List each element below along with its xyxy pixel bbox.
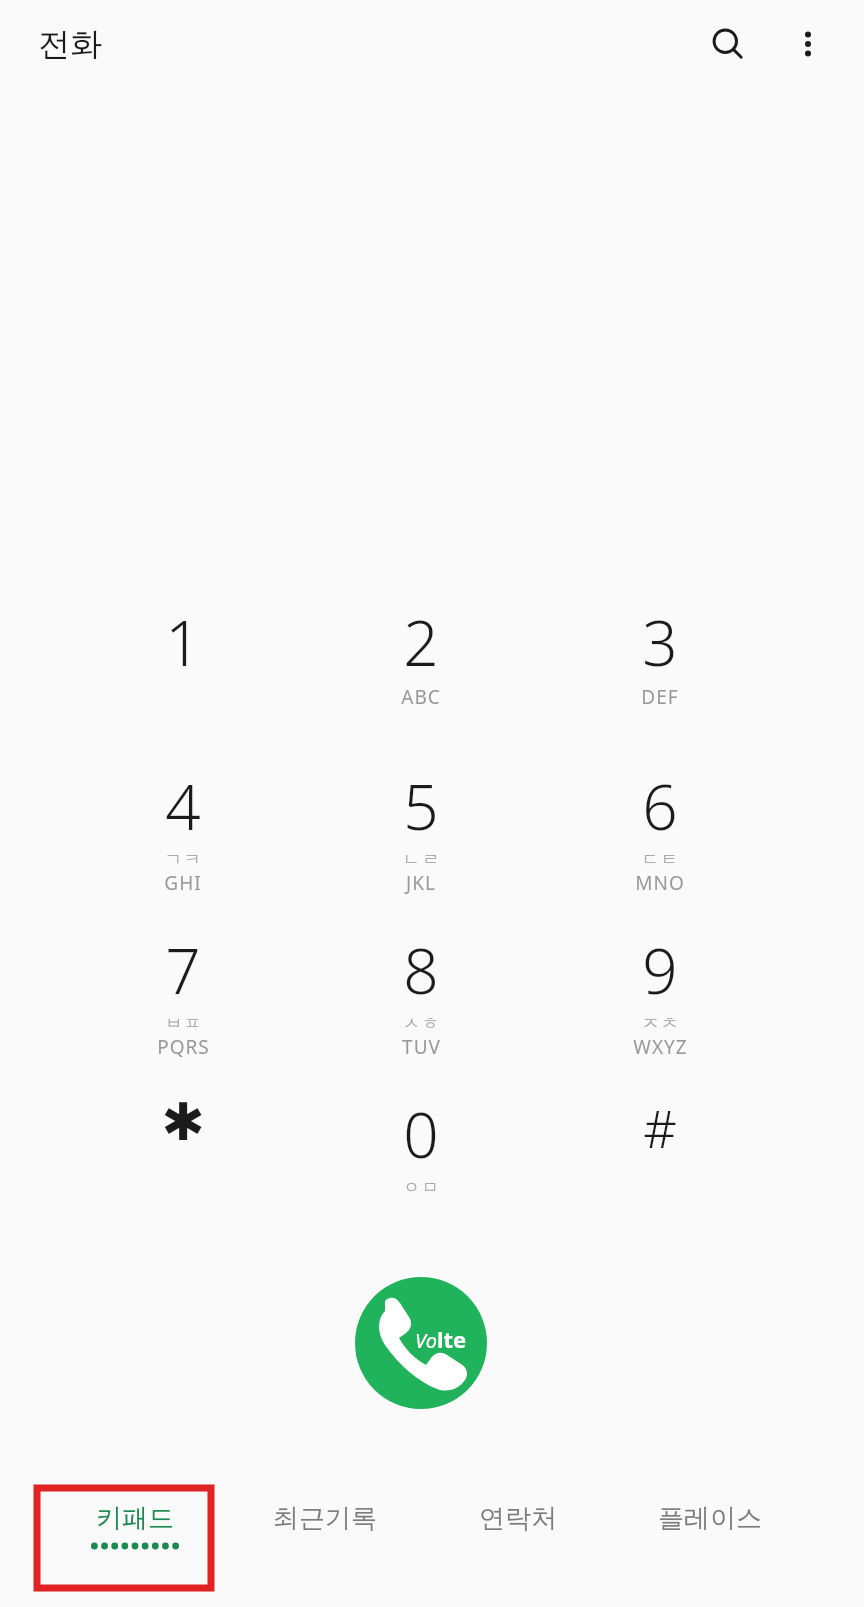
staticText: TUV: [402, 1034, 441, 1060]
button[interactable]: 연락처: [426, 1480, 610, 1592]
button[interactable]: 0: [337, 1086, 505, 1232]
button[interactable]: 3: [576, 594, 744, 740]
staticText: DEF: [641, 684, 679, 710]
staticText: 0: [403, 1092, 439, 1176]
staticText: ㅂㅍ: [164, 1013, 202, 1034]
button[interactable]: 8: [337, 922, 505, 1068]
staticText: 2: [403, 600, 439, 684]
staticText: 연락처: [479, 1502, 557, 1535]
staticText: 6: [642, 764, 678, 848]
staticText: 9: [642, 928, 678, 1012]
button[interactable]: 플레이스: [618, 1480, 802, 1592]
staticText: 4: [165, 764, 201, 848]
staticText: 7: [165, 928, 201, 1012]
button[interactable]: More options: [772, 8, 844, 80]
button[interactable]: 키패드: [43, 1480, 227, 1592]
staticText: ㄱㅋ: [164, 849, 202, 870]
staticText: 1: [165, 600, 201, 684]
staticText: 전화: [38, 24, 102, 64]
staticText: ㅅㅎ: [402, 1013, 440, 1034]
staticText: lte: [437, 1324, 467, 1354]
staticText: ✱: [161, 1092, 205, 1153]
staticText: ㅇㅁ: [402, 1177, 440, 1198]
staticText: ㄴㄹ: [402, 849, 440, 870]
staticText: GHI: [164, 870, 202, 896]
button[interactable]: ✱: [99, 1086, 267, 1232]
button[interactable]: #: [576, 1086, 744, 1232]
button[interactable]: 7: [99, 922, 267, 1068]
button[interactable]: 4: [99, 758, 267, 904]
staticText: 3: [642, 600, 678, 684]
button[interactable]: 최근기록: [233, 1480, 417, 1592]
staticText: Vo: [415, 1327, 437, 1354]
staticText: 플레이스: [658, 1502, 762, 1535]
button[interactable]: 2: [337, 594, 505, 740]
staticText: ㅈㅊ: [641, 1013, 679, 1034]
staticText: 최근기록: [273, 1502, 377, 1535]
staticText: 8: [403, 928, 439, 1012]
button[interactable]: Call: [355, 1277, 487, 1409]
staticText: WXYZ: [633, 1034, 688, 1060]
button[interactable]: Search: [692, 8, 764, 80]
button[interactable]: 6: [576, 758, 744, 904]
staticText: 5: [403, 764, 439, 848]
staticText: #: [643, 1092, 677, 1163]
button[interactable]: 5: [337, 758, 505, 904]
staticText: ㄷㅌ: [641, 849, 679, 870]
staticText: 키패드: [96, 1502, 174, 1535]
staticText: JKL: [406, 870, 436, 896]
staticText: ABC: [401, 684, 441, 710]
button[interactable]: 9: [576, 922, 744, 1068]
button[interactable]: 1: [99, 594, 267, 740]
staticText: MNO: [635, 870, 685, 896]
staticText: PQRS: [157, 1034, 210, 1060]
